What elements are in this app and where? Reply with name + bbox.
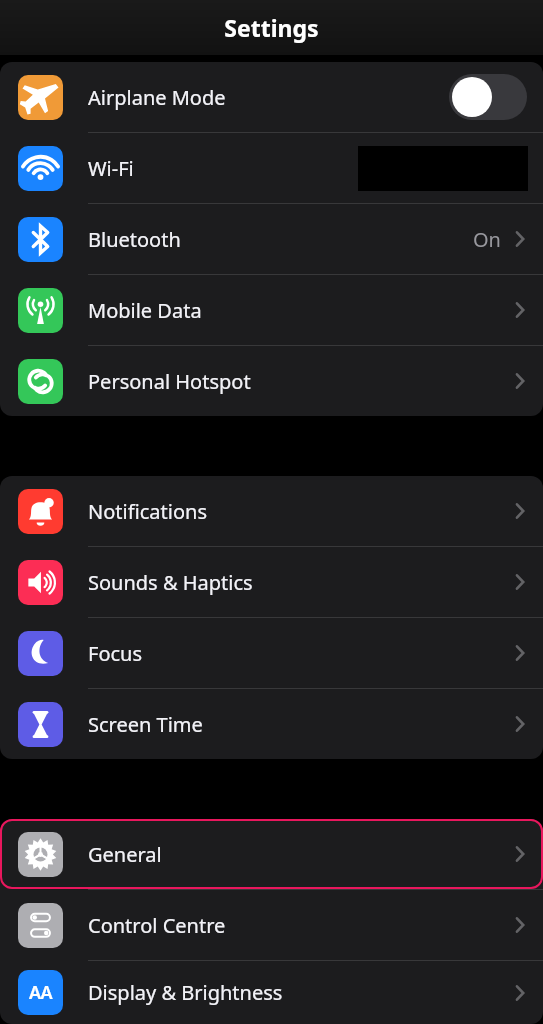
button[interactable]: Sounds & Haptics [0, 547, 543, 617]
staticText: Airplane Mode [88, 84, 449, 111]
staticText: Control Centre [88, 912, 511, 939]
staticText: Settings [224, 12, 319, 43]
button[interactable]: Screen Time [0, 689, 543, 759]
button[interactable]: Airplane Mode toggle [449, 74, 527, 120]
staticText: Mobile Data [88, 297, 511, 324]
button[interactable]: Focus [0, 618, 543, 688]
button[interactable]: Airplane Mode [0, 62, 543, 132]
button[interactable]: General [0, 819, 543, 889]
button[interactable]: AA [0, 961, 543, 1024]
button[interactable]: Mobile Data [0, 275, 543, 345]
button[interactable]: Notifications [0, 476, 543, 546]
staticText: On [473, 226, 501, 253]
staticText: Screen Time [88, 711, 511, 738]
staticText: Focus [88, 640, 511, 667]
staticText: AA [29, 980, 53, 1005]
button[interactable]: Personal Hotspot [0, 346, 543, 416]
button[interactable]: Control Centre [0, 890, 543, 960]
staticText: Sounds & Haptics [88, 569, 511, 596]
staticText: General [88, 841, 511, 868]
button[interactable]: Bluetooth [0, 204, 543, 274]
staticText: Display & Brightness [88, 979, 511, 1006]
button[interactable]: Wi-Fi [0, 133, 543, 203]
staticText: Notifications [88, 498, 511, 525]
staticText: Personal Hotspot [88, 368, 511, 395]
staticText: Wi-Fi [88, 155, 358, 182]
staticText: Bluetooth [88, 226, 473, 253]
